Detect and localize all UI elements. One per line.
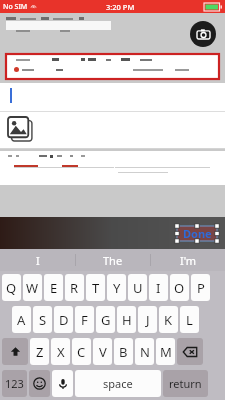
staticText: X	[57, 343, 65, 361]
button[interactable]: O	[170, 274, 189, 301]
button[interactable]: D	[54, 306, 73, 333]
button[interactable]: B	[114, 338, 133, 365]
staticText: return	[169, 376, 202, 391]
button[interactable]: return	[163, 370, 208, 397]
button[interactable]: Done	[177, 226, 217, 241]
button[interactable]: Emoji	[29, 370, 50, 397]
staticText: 3:20 PM	[106, 2, 135, 12]
staticText: R	[70, 279, 79, 297]
staticText: M	[160, 343, 172, 361]
staticText: F	[81, 311, 88, 329]
staticText: The	[103, 253, 123, 268]
staticText: B	[119, 343, 128, 361]
staticText: 123	[5, 376, 24, 391]
staticText: space	[103, 376, 133, 391]
button[interactable]	[6, 54, 219, 79]
button[interactable]: Backspace	[177, 338, 203, 365]
button[interactable]: F	[75, 306, 94, 333]
button[interactable]: Photo attachment	[8, 117, 34, 143]
staticText: Y	[113, 279, 121, 297]
button[interactable]: Y	[107, 274, 126, 301]
button[interactable]: H	[117, 306, 136, 333]
button[interactable]: X	[51, 338, 70, 365]
button[interactable]: S	[33, 306, 52, 333]
button[interactable]	[0, 151, 225, 185]
button[interactable]: G	[96, 306, 115, 333]
button[interactable]	[0, 83, 225, 111]
staticText: Z	[36, 343, 44, 361]
button[interactable]: I	[149, 274, 168, 301]
button[interactable]: Camera	[190, 21, 216, 47]
button[interactable]: R	[65, 274, 84, 301]
staticText: U	[133, 279, 143, 297]
staticText: O	[174, 279, 185, 297]
staticText: D	[59, 311, 69, 329]
button[interactable]: Shift	[2, 338, 28, 365]
staticText: P	[197, 279, 205, 297]
button[interactable]: I	[0, 249, 75, 271]
button[interactable]: L	[180, 306, 199, 333]
button[interactable]: P	[191, 274, 210, 301]
staticText: H	[122, 311, 132, 329]
button[interactable]: E	[44, 274, 63, 301]
button[interactable]: Dictate	[52, 370, 73, 397]
button[interactable]: I'm	[151, 249, 225, 271]
button[interactable]: J	[138, 306, 157, 333]
button[interactable]: N	[135, 338, 154, 365]
staticText: C	[77, 343, 86, 361]
staticText: E	[50, 279, 58, 297]
staticText: K	[164, 311, 173, 329]
staticText: I	[36, 253, 40, 268]
staticText: L	[186, 311, 193, 329]
staticText: I	[156, 279, 161, 297]
button[interactable]: C	[72, 338, 91, 365]
staticText: A	[17, 311, 26, 329]
button[interactable]: K	[159, 306, 178, 333]
button[interactable]: W	[23, 274, 42, 301]
staticText: Q	[6, 279, 17, 297]
button[interactable]: The	[76, 249, 150, 271]
staticText: N	[140, 343, 150, 361]
staticText: No SIM	[3, 2, 28, 12]
staticText: T	[92, 279, 100, 297]
staticText: V	[99, 343, 107, 361]
button[interactable]: Q	[2, 274, 21, 301]
staticText: Done	[183, 226, 212, 241]
button[interactable]: Z	[30, 338, 49, 365]
button[interactable]: U	[128, 274, 147, 301]
button[interactable]: space	[75, 370, 161, 397]
staticText: G	[101, 311, 111, 329]
staticText: W	[26, 279, 39, 297]
staticText: J	[146, 311, 150, 329]
staticText: I'm	[180, 253, 197, 268]
button[interactable]: A	[12, 306, 31, 333]
button[interactable]: T	[86, 274, 105, 301]
button[interactable]: M	[156, 338, 175, 365]
button[interactable]: 123	[2, 370, 27, 397]
button[interactable]: V	[93, 338, 112, 365]
staticText: S	[39, 311, 47, 329]
